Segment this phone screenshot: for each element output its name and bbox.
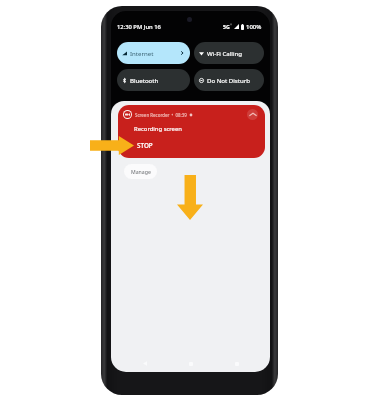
button[interactable]: Internet — [117, 42, 190, 64]
button[interactable]: Collapse notification — [247, 109, 258, 120]
button[interactable]: Do Not Disturb — [194, 69, 264, 91]
staticText: Screen Recorder • 08:39 — [135, 112, 187, 118]
staticText: 5G — [223, 23, 230, 30]
button[interactable]: Home — [186, 359, 195, 368]
staticText: 100% — [246, 23, 262, 31]
staticText: Do Not Disturb — [207, 76, 250, 84]
staticText: 12:30 PM Jun 16 — [117, 23, 161, 31]
staticText: STOP — [137, 141, 153, 150]
button[interactable]: Recents — [232, 359, 241, 368]
staticText: Wi-Fi Calling — [207, 49, 243, 57]
staticText: Recording screen — [134, 125, 182, 133]
staticText: Bluetooth — [130, 76, 159, 84]
button[interactable]: Bluetooth — [117, 69, 190, 91]
button[interactable]: Screen Recorder • 08:39 — [118, 105, 265, 158]
staticText: Internet — [130, 49, 154, 57]
button[interactable]: Wi-Fi Calling — [194, 42, 264, 64]
staticText: Manage — [131, 168, 151, 175]
button[interactable]: Manage — [124, 164, 157, 179]
